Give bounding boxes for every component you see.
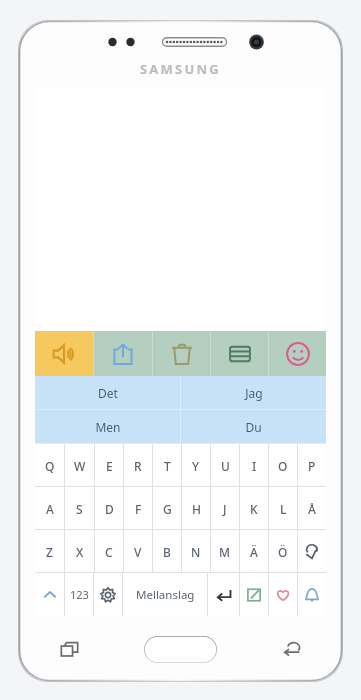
button[interactable]: M [211, 530, 239, 573]
staticText: V [134, 544, 142, 560]
staticText: Men [95, 419, 121, 435]
staticText: L [280, 501, 287, 517]
staticText: Ä [250, 544, 258, 560]
staticText: K [250, 501, 258, 517]
button[interactable]: V [124, 530, 152, 573]
button[interactable]: Share [94, 331, 152, 376]
button[interactable]: Undo [298, 530, 326, 573]
staticText: Z [46, 544, 53, 560]
button[interactable]: B [153, 530, 181, 573]
button[interactable]: G [153, 487, 181, 530]
button[interactable]: Shift [35, 573, 64, 616]
staticText: S [76, 501, 83, 517]
staticText: J [223, 501, 227, 517]
button[interactable]: A [35, 487, 64, 530]
button[interactable]: Notifications [298, 573, 326, 616]
staticText: D [105, 501, 114, 517]
button[interactable]: Back [275, 632, 309, 666]
button[interactable]: U [211, 444, 239, 487]
button[interactable]: Delete [153, 331, 210, 376]
button[interactable]: List [211, 331, 268, 376]
staticText: M [219, 544, 231, 560]
button[interactable]: L [269, 487, 297, 530]
button[interactable]: Favorite [269, 573, 297, 616]
staticText: Ö [278, 544, 288, 560]
button[interactable]: S [65, 487, 94, 530]
button[interactable]: Mellanslag [123, 573, 207, 616]
staticText: T [164, 458, 171, 474]
button[interactable]: N [182, 530, 210, 573]
staticText: A [46, 501, 54, 517]
button[interactable]: Jag [181, 376, 326, 409]
staticText: O [278, 458, 288, 474]
button[interactable]: Recents [52, 632, 86, 666]
staticText: 123 [70, 587, 89, 602]
button[interactable]: Du [181, 410, 326, 443]
button[interactable]: W [65, 444, 94, 487]
staticText: H [192, 501, 201, 517]
button[interactable]: C [95, 530, 123, 573]
button[interactable]: F [124, 487, 152, 530]
button[interactable]: K [240, 487, 268, 530]
staticText: N [191, 544, 201, 560]
button[interactable]: I [240, 444, 268, 487]
button[interactable]: Det [35, 376, 180, 409]
button[interactable]: P [298, 444, 326, 487]
button[interactable]: Home [144, 636, 217, 663]
staticText: Y [192, 458, 200, 474]
staticText: R [134, 458, 142, 474]
staticText: F [135, 501, 142, 517]
button[interactable]: Z [35, 530, 64, 573]
button[interactable]: Men [35, 410, 180, 443]
button[interactable]: Ä [240, 530, 268, 573]
button[interactable]: 123 [65, 573, 93, 616]
staticText: SAMSUNG [140, 60, 221, 78]
button[interactable]: J [211, 487, 239, 530]
button[interactable]: Y [182, 444, 210, 487]
staticText: Du [245, 419, 262, 435]
staticText: U [221, 458, 230, 474]
staticText: Det [98, 385, 118, 401]
staticText: P [308, 458, 316, 474]
staticText: Jag [245, 385, 263, 401]
button[interactable]: R [124, 444, 152, 487]
button[interactable]: Edit [240, 573, 268, 616]
button[interactable]: H [182, 487, 210, 530]
staticText: W [74, 458, 86, 474]
button[interactable]: E [95, 444, 123, 487]
button[interactable]: Settings [94, 573, 122, 616]
button[interactable]: Enter [208, 573, 239, 616]
staticText: I [252, 458, 257, 474]
staticText: Q [45, 458, 55, 474]
button[interactable]: D [95, 487, 123, 530]
button[interactable]: Q [35, 444, 64, 487]
staticText: Å [308, 501, 316, 517]
staticText: B [163, 544, 171, 560]
staticText: E [106, 458, 113, 474]
button[interactable]: O [269, 444, 297, 487]
button[interactable]: Speak [35, 331, 93, 376]
staticText: G [163, 501, 172, 517]
staticText: C [105, 544, 113, 560]
button[interactable]: Å [298, 487, 326, 530]
staticText: X [76, 544, 84, 560]
staticText: Mellanslag [136, 587, 195, 603]
button[interactable]: Emoji [269, 331, 326, 376]
button[interactable]: Ö [269, 530, 297, 573]
button[interactable]: T [153, 444, 181, 487]
button[interactable]: X [65, 530, 94, 573]
